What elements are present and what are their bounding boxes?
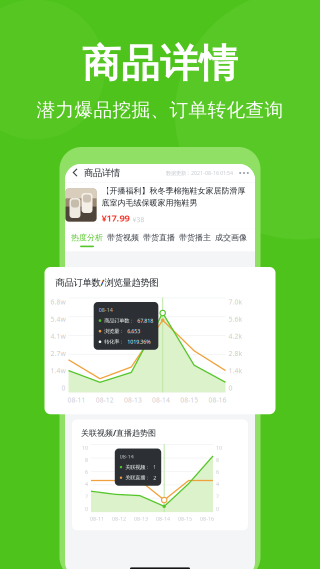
staticText: 08-11: [68, 395, 86, 404]
staticText: 8: [216, 456, 219, 463]
button[interactable]: 带货直播: [141, 229, 177, 250]
staticText: 2: [85, 493, 88, 500]
staticText: 转化率：: [104, 338, 124, 345]
staticText: 5.4w: [50, 315, 65, 323]
button[interactable]: 带货视频: [105, 229, 141, 250]
staticText: 4: [85, 481, 88, 488]
staticText: 6: [85, 468, 88, 476]
staticText: 10: [216, 444, 222, 451]
staticText: 7.0k: [228, 297, 242, 306]
staticText: 08-16: [208, 395, 226, 404]
staticText: 10: [82, 444, 88, 451]
staticText: 2.8k: [228, 349, 242, 358]
staticText: 1.4w: [50, 366, 65, 375]
staticText: 2: [153, 474, 156, 481]
staticText: 商品订单数/浏览量趋势图: [55, 276, 158, 288]
staticText: 带货直播: [143, 233, 175, 243]
staticText: 成交画像: [215, 233, 247, 243]
staticText: 08-11: [90, 515, 104, 522]
staticText: 商品详情: [84, 167, 120, 179]
staticText: 关联视频：: [125, 464, 150, 470]
staticText: 关联视频/直播趋势图: [81, 427, 156, 438]
staticText: 1.4k: [228, 366, 242, 375]
button[interactable]: 带货播主: [177, 229, 213, 250]
staticText: 2: [216, 493, 219, 500]
staticText: 【开播福利】秋冬季棉拖鞋女家居防滑厚: [101, 186, 245, 196]
staticText: 商品订单数：: [104, 317, 134, 324]
staticText: 0: [216, 505, 219, 512]
staticText: 08-12: [112, 515, 126, 522]
staticText: 08-15: [180, 395, 198, 404]
staticText: 67,818: [137, 317, 153, 324]
staticText: 0: [61, 383, 65, 392]
button[interactable]: 返回: [65, 164, 84, 182]
staticText: 08-14: [156, 515, 170, 522]
button[interactable]: 热度分析: [69, 229, 105, 250]
staticText: 带货播主: [179, 233, 211, 243]
staticText: 08-16: [200, 515, 214, 522]
staticText: 08-15: [178, 515, 192, 522]
staticText: 6.8w: [50, 297, 65, 306]
staticText: ¥17.99: [101, 212, 129, 224]
staticText: 底室内毛绒保暖家用拖鞋男: [101, 198, 197, 208]
staticText: 1019.36%: [127, 338, 150, 345]
button[interactable]: 更多: [233, 164, 255, 182]
staticText: 08-14: [120, 453, 134, 460]
staticText: ¥38: [132, 215, 144, 224]
staticText: 1: [153, 464, 156, 471]
staticText: 08-12: [96, 395, 114, 404]
staticText: 6: [216, 468, 219, 476]
button[interactable]: 成交画像: [213, 229, 249, 250]
staticText: 2.7w: [50, 349, 65, 358]
staticText: 商品详情: [82, 40, 238, 87]
staticText: 4.1w: [50, 332, 65, 341]
staticText: 4: [216, 481, 219, 488]
staticText: 数据更新：2021-08-16 01:54: [166, 169, 233, 177]
staticText: 0: [85, 505, 88, 512]
staticText: 08-13: [124, 395, 142, 404]
staticText: 关联直播：: [125, 474, 150, 481]
staticText: 5.6k: [228, 315, 242, 323]
staticText: 08-14: [152, 395, 170, 404]
staticText: 4.2k: [228, 332, 242, 341]
staticText: 08-13: [134, 515, 148, 522]
staticText: 8: [85, 456, 88, 463]
staticText: 浏览量：: [104, 328, 124, 334]
staticText: 08-14: [99, 306, 113, 314]
staticText: 6,653: [127, 328, 140, 335]
staticText: 热度分析: [71, 233, 103, 243]
staticText: 潜力爆品挖掘、订单转化查询: [36, 98, 283, 121]
staticText: 带货视频: [107, 233, 139, 243]
staticText: 0: [228, 383, 232, 392]
